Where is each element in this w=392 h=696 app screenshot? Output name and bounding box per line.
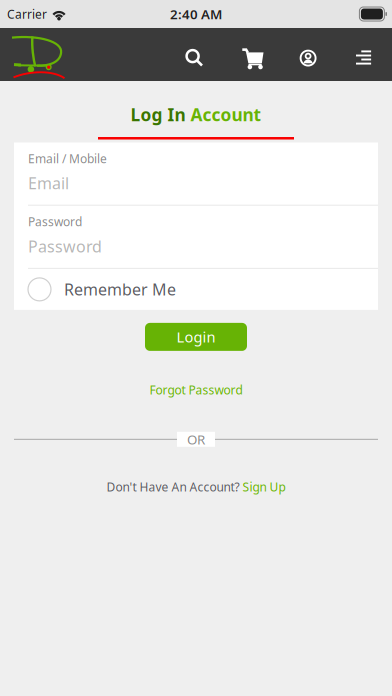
- button[interactable]: Sign Up: [242, 479, 285, 495]
- button[interactable]: Menu: [336, 28, 392, 81]
- button[interactable]: Home: [0, 28, 66, 81]
- button[interactable]: Forgot Password: [149, 382, 242, 398]
- staticText: Email / Mobile: [28, 150, 107, 166]
- button[interactable]: Search: [164, 28, 225, 81]
- staticText: Login: [176, 327, 215, 347]
- staticText: OR: [187, 430, 205, 448]
- staticText: Log In: [130, 103, 190, 126]
- staticText: Password: [28, 214, 82, 230]
- staticText: Account: [190, 103, 261, 126]
- button[interactable]: Shopping cart: [225, 28, 281, 81]
- button[interactable]: Remember Me: [14, 269, 378, 310]
- staticText: 2:40 AM: [170, 5, 222, 23]
- staticText: Email: [28, 172, 69, 194]
- button[interactable]: Account: [281, 28, 336, 81]
- staticText: Don't Have An Account?: [106, 479, 242, 495]
- staticText: Carrier: [7, 6, 47, 22]
- staticText: Remember Me: [64, 279, 176, 300]
- staticText: Sign Up: [242, 479, 285, 495]
- staticText: Password: [28, 236, 102, 257]
- staticText: Forgot Password: [149, 382, 242, 398]
- button[interactable]: Login: [145, 323, 247, 351]
